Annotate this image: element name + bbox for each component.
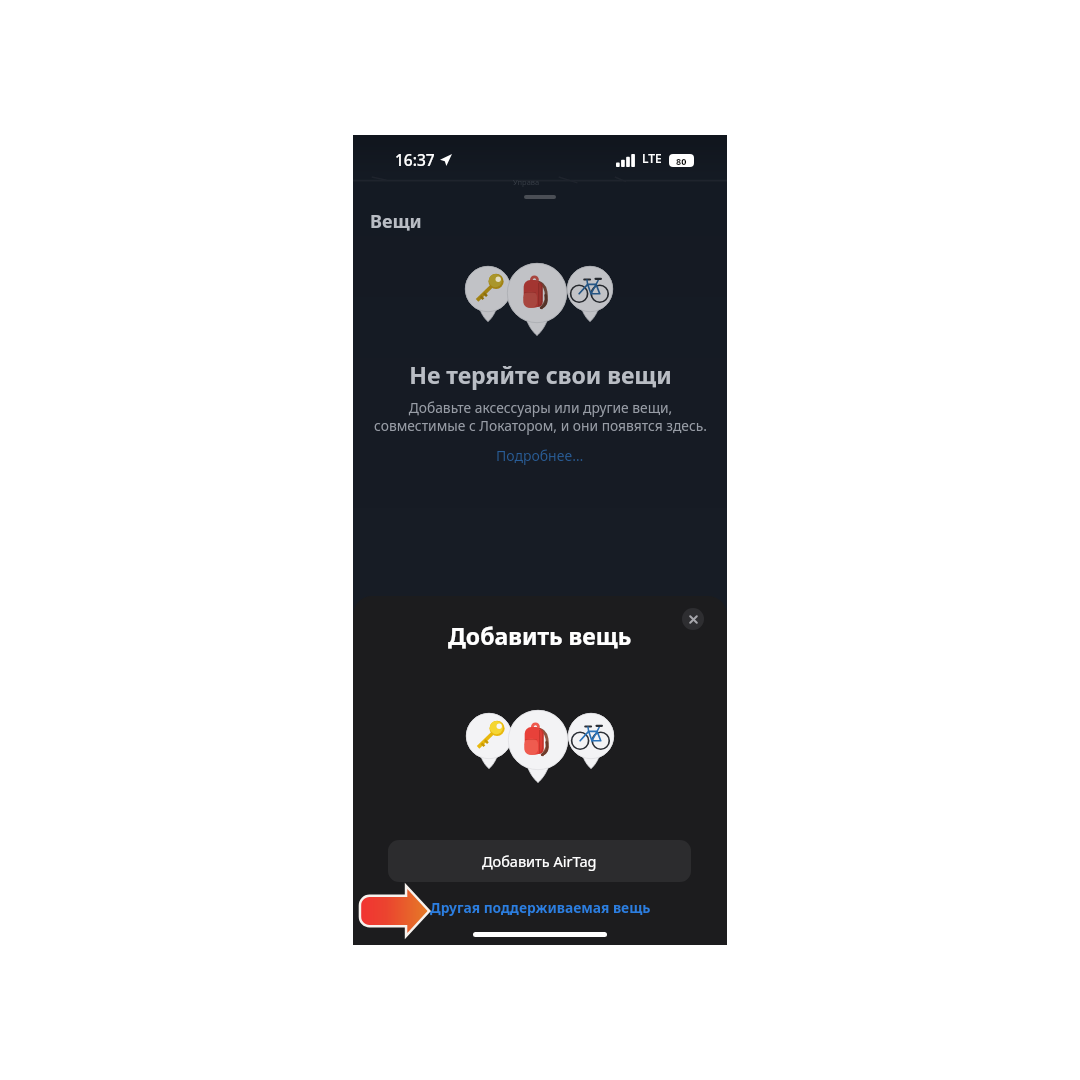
- staticText: Добавить вещь: [448, 620, 632, 651]
- staticText: 16:37: [395, 149, 435, 170]
- staticText: Подробнее…: [496, 446, 584, 465]
- button[interactable]: Добавить AirTag: [388, 840, 691, 882]
- staticText: Управа: [513, 177, 540, 187]
- staticText: Не теряйте свои вещи: [409, 359, 672, 390]
- button[interactable]: Подробнее…: [496, 446, 584, 465]
- staticText: Добавьте аксессуары или другие вещи, сов…: [374, 398, 707, 435]
- staticText: LTE: [642, 150, 662, 166]
- staticText: 80: [676, 155, 687, 167]
- staticText: Добавить AirTag: [482, 851, 597, 871]
- staticText: Вещи: [370, 209, 422, 234]
- staticText: Другая поддерживаемая вещь: [430, 898, 651, 917]
- button[interactable]: Другая поддерживаемая вещь: [430, 898, 651, 917]
- button[interactable]: Закрыть: [682, 608, 704, 630]
